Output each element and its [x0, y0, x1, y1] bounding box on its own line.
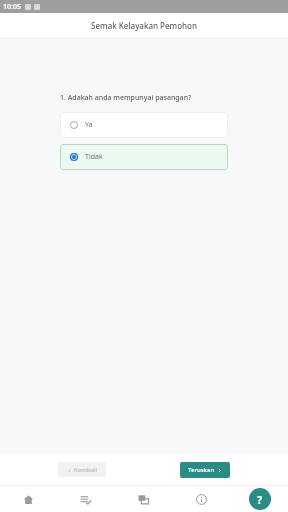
button[interactable]: Checklist	[57, 486, 114, 512]
button[interactable]: Ya	[60, 112, 228, 138]
staticText: Kembali	[74, 466, 98, 474]
staticText: 1. Adakah anda mempunyai pasangan?	[60, 93, 192, 103]
button[interactable]: Info	[172, 486, 230, 512]
button[interactable]: Home	[0, 486, 57, 512]
staticText: Tidak	[85, 152, 103, 162]
staticText: ?	[257, 492, 263, 507]
button[interactable]: Teruskan	[180, 462, 230, 478]
staticText: Teruskan	[188, 466, 215, 474]
staticText: Ya	[85, 120, 93, 130]
button[interactable]: Tidak	[60, 144, 228, 170]
staticText: Semak Kelayakan Pemohon	[91, 20, 197, 31]
button[interactable]: Help	[249, 488, 271, 510]
button[interactable]: Kembali	[58, 462, 106, 477]
button[interactable]: Messages	[114, 486, 172, 512]
staticText: 10:05	[3, 2, 21, 12]
